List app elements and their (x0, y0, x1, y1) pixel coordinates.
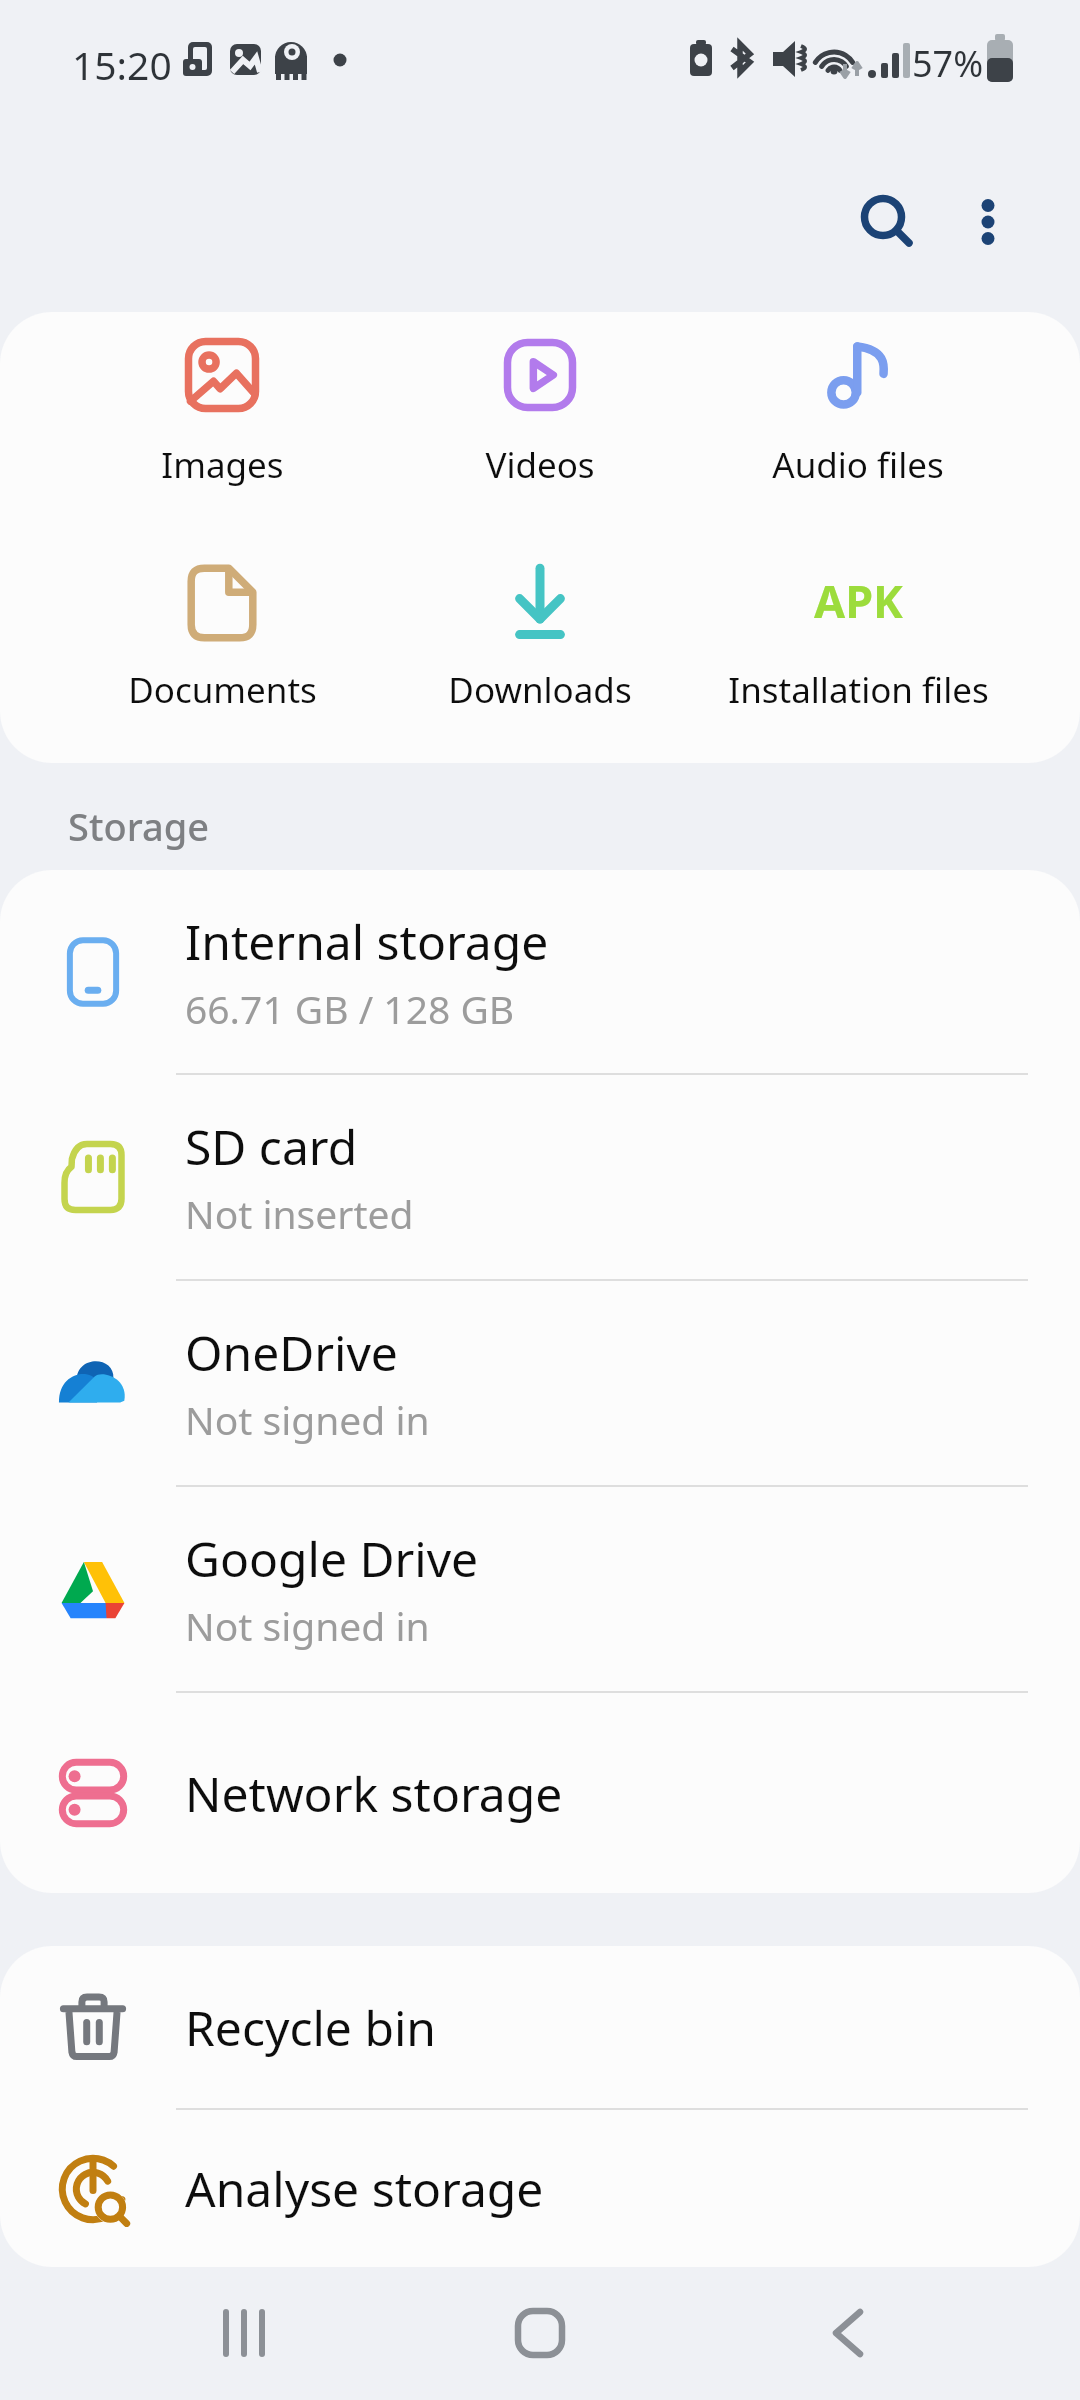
button[interactable]: Videos (381, 338, 699, 489)
button[interactable]: Downloads (381, 563, 699, 714)
button[interactable]: Google Drive (0, 1487, 1080, 1693)
button[interactable]: Audio files (699, 338, 1017, 489)
button[interactable]: APK (699, 563, 1017, 714)
staticText: Documents (128, 666, 317, 714)
button[interactable]: Back (754, 2265, 942, 2400)
staticText: Internal storage (185, 909, 549, 974)
button[interactable]: SD card (0, 1075, 1080, 1281)
staticText: Network storage (185, 1761, 563, 1826)
button[interactable]: Network storage (0, 1693, 1080, 1893)
staticText: 66.71 GB / 128 GB (185, 982, 515, 1035)
staticText: 57% (912, 39, 984, 88)
staticText: Not signed in (185, 1393, 430, 1446)
staticText: Audio files (772, 441, 944, 489)
staticText: Not inserted (185, 1187, 414, 1240)
staticText: OneDrive (185, 1320, 398, 1385)
button[interactable]: Recents (150, 2265, 338, 2400)
button[interactable]: Home (446, 2265, 634, 2400)
staticText: 15:20 (72, 38, 172, 91)
staticText: Recycle bin (185, 1995, 436, 2060)
button[interactable]: More options (938, 172, 1038, 272)
staticText: Storage (68, 800, 210, 852)
staticText: Downloads (448, 666, 632, 714)
button[interactable]: Search (838, 172, 938, 272)
button[interactable]: Documents (63, 563, 381, 714)
staticText: Not signed in (185, 1599, 430, 1652)
staticText: Google Drive (185, 1526, 479, 1591)
staticText: Installation files (728, 666, 989, 714)
staticText: SD card (185, 1114, 358, 1179)
button[interactable]: OneDrive (0, 1281, 1080, 1487)
button[interactable]: Recycle bin (0, 1946, 1080, 2110)
button[interactable]: Internal storage (0, 870, 1080, 1075)
button[interactable]: Analyse storage (0, 2110, 1080, 2267)
staticText: Analyse storage (185, 2156, 544, 2221)
button[interactable]: Images (63, 338, 381, 489)
staticText: APK (814, 570, 903, 631)
staticText: Images (161, 441, 284, 489)
staticText: Videos (485, 441, 595, 489)
